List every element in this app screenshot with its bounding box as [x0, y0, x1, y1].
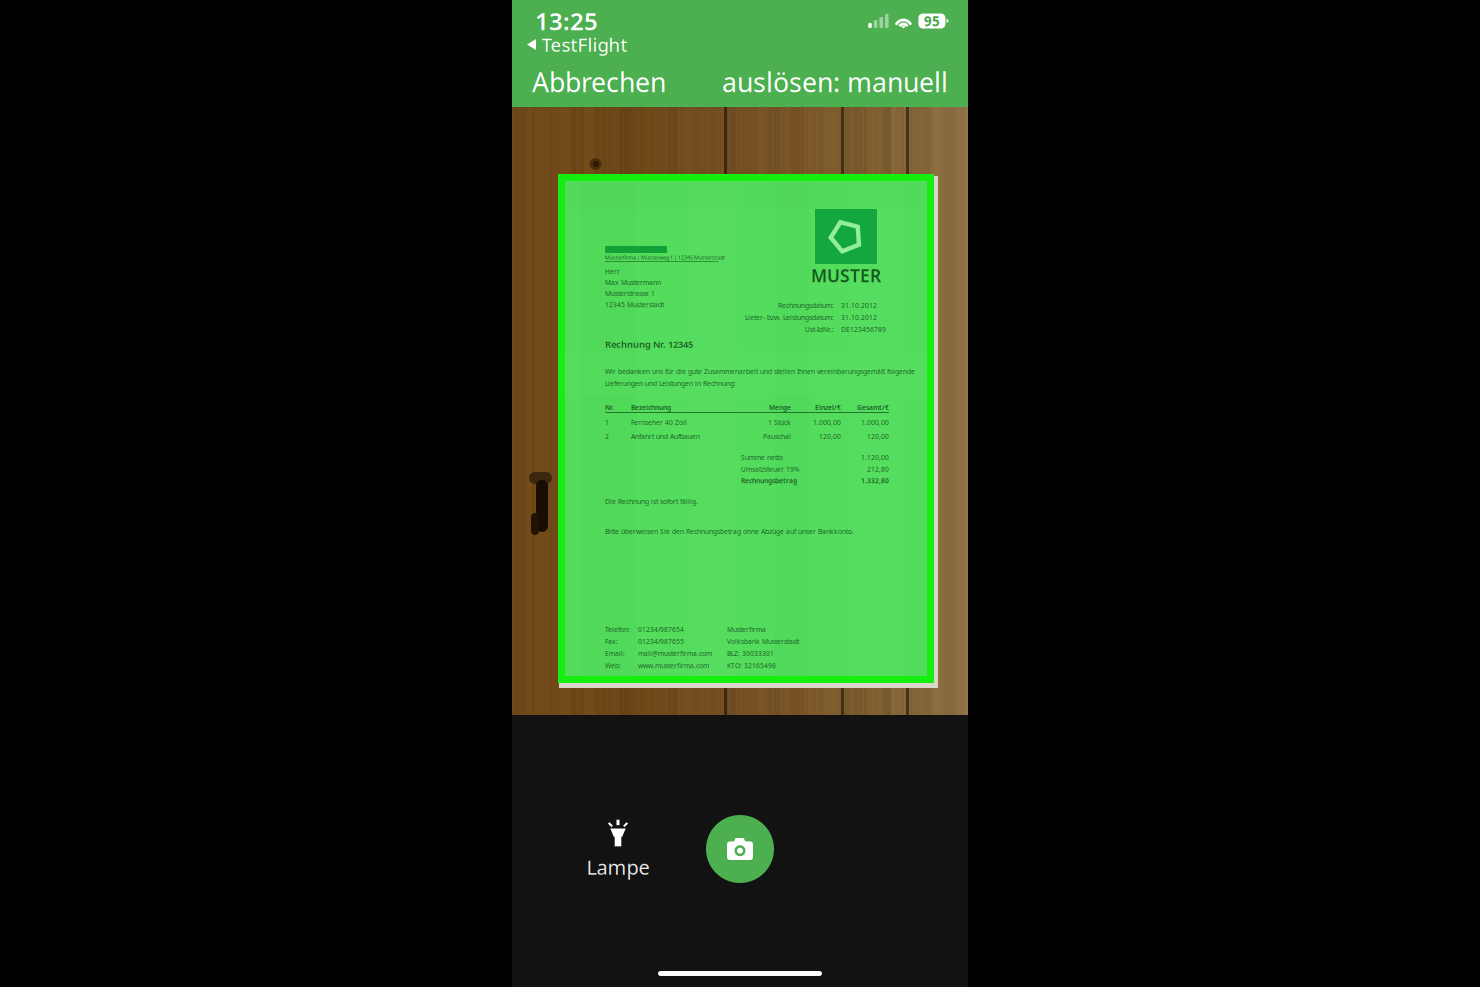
- staticText: 120,00: [819, 432, 841, 441]
- button[interactable]: Abbrechen: [524, 59, 674, 105]
- staticText: 120,00: [867, 432, 889, 441]
- staticText: 12345 Musterstadt: [605, 300, 664, 309]
- staticText: Musterfirma: [727, 625, 766, 634]
- staticText: Pauschal: [763, 432, 791, 441]
- staticText: 01234/987654: [638, 625, 684, 634]
- staticText: Fax:: [605, 637, 618, 646]
- staticText: Musterfirma | Musterweg 1 | 12345 Muster…: [605, 254, 725, 261]
- staticText: 2: [605, 432, 609, 441]
- staticText: 1: [605, 418, 609, 427]
- staticText: 1.120,00: [861, 453, 889, 462]
- staticText: www.musterfirma.com: [638, 661, 709, 670]
- staticText: Ust-IdNr.:: [805, 325, 834, 334]
- staticText: Einzel/€: [815, 403, 841, 412]
- staticText: Rechnungsdatum:: [778, 301, 834, 310]
- staticText: 01234/987655: [638, 637, 684, 646]
- staticText: TestFlight: [541, 32, 627, 57]
- staticText: Anfahrt und Aufbauen: [631, 432, 700, 441]
- staticText: Herr: [605, 267, 620, 276]
- staticText: Musterstrasse 1: [605, 289, 655, 298]
- staticText: 1.000,00: [813, 418, 841, 427]
- staticText: Die Rechnung ist sofort fällig.: [605, 497, 698, 506]
- staticText: Rechnung Nr. 12345: [605, 338, 693, 350]
- staticText: Fernseher 40 Zoll: [631, 418, 687, 427]
- staticText: Umsatzsteuer 19%: [741, 465, 800, 474]
- staticText: Rechnungsbetrag: [741, 476, 797, 485]
- staticText: 1 Stück: [768, 418, 791, 427]
- staticText: Bitte überweisen Sie den Rechnungsbetrag…: [605, 527, 854, 536]
- staticText: auslösen: manuell: [722, 64, 948, 100]
- button[interactable]: auslösen: manuell: [714, 59, 956, 105]
- staticText: Abbrechen: [532, 64, 666, 100]
- staticText: Menge: [769, 403, 791, 412]
- staticText: 212,80: [867, 465, 889, 474]
- button[interactable]: Lampe: [570, 819, 666, 881]
- staticText: 13:25: [535, 5, 598, 37]
- button[interactable]: Auslösen: [706, 815, 774, 883]
- staticText: Lieferungen und Leistungen in Rechnung:: [605, 379, 736, 388]
- staticText: 1.332,80: [861, 476, 889, 485]
- staticText: 1.000,00: [861, 418, 889, 427]
- staticText: KTO: 32165498: [727, 661, 776, 670]
- staticText: DE123456789: [841, 325, 886, 334]
- staticText: Web:: [605, 661, 621, 670]
- staticText: mail@musterfirma.com: [638, 649, 712, 658]
- staticText: 31.10.2012: [841, 301, 877, 310]
- staticText: Wir bedanken uns für die gute Zusammenar…: [605, 367, 915, 376]
- staticText: Gesamt/€: [857, 403, 889, 412]
- staticText: Summe netto: [741, 453, 783, 462]
- staticText: BLZ: 30033301: [727, 649, 774, 658]
- staticText: Telefon:: [605, 625, 630, 634]
- staticText: Nr.: [605, 403, 614, 412]
- staticText: MUSTER: [811, 264, 881, 287]
- staticText: 31.10.2012: [841, 313, 877, 322]
- staticText: 95: [924, 12, 940, 30]
- staticText: Bezeichnung: [631, 403, 671, 412]
- staticText: Lieter- bzw. Leistungsdatum:: [745, 313, 834, 322]
- staticText: Email:: [605, 649, 625, 658]
- staticText: Volksbank Musterstadt: [727, 637, 799, 646]
- staticText: Max Mustermann: [605, 278, 661, 287]
- staticText: Lampe: [586, 854, 649, 880]
